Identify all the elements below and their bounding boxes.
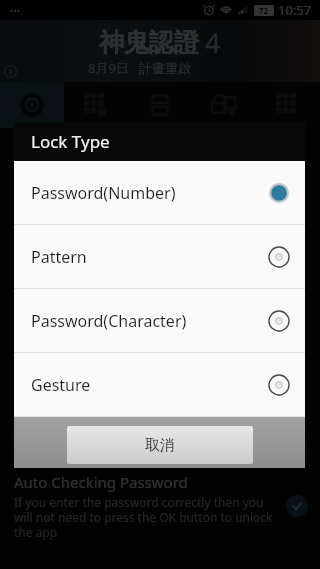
button[interactable]: Auto Checking Password: [0, 464, 320, 550]
staticText: Password(Number): [31, 182, 268, 204]
staticText: Gesture: [31, 374, 268, 396]
staticText: 8月9日 計畫重啟: [88, 59, 192, 77]
staticText: Lock Type: [31, 130, 110, 153]
button[interactable]: Password(Character): [14, 289, 305, 352]
staticText: Password(Character): [31, 310, 268, 332]
staticText: •••: [10, 4, 21, 16]
staticText: 取消: [145, 436, 175, 455]
staticText: 10:57: [278, 1, 312, 19]
staticText: If you enter the password correctly then…: [14, 494, 276, 540]
button[interactable]: Pattern: [14, 225, 305, 288]
staticText: Pattern: [31, 246, 268, 268]
staticText: 4: [205, 24, 221, 61]
staticText: Auto Checking Password: [14, 472, 188, 492]
other: Enabled: [286, 495, 308, 517]
button[interactable]: 取消: [67, 426, 253, 464]
staticText: 72: [259, 5, 269, 16]
button[interactable]: Password(Number): [14, 161, 305, 224]
button[interactable]: Gesture: [14, 353, 305, 416]
staticText: 神鬼認證: [99, 27, 199, 58]
button[interactable]: Tab: [0, 82, 64, 128]
